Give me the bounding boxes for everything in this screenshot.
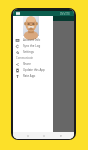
button[interactable]: Open navigation menu	[15, 11, 20, 16]
button[interactable]	[13, 16, 53, 36]
button[interactable]: Home	[41, 133, 46, 138]
button[interactable]: Rate App	[13, 73, 53, 79]
button[interactable]: Settings	[13, 49, 53, 55]
button[interactable]: Update this App	[13, 67, 53, 73]
staticText: Account Info	[23, 38, 41, 42]
button[interactable]: INVITE	[60, 12, 71, 16]
button[interactable]	[53, 16, 74, 132]
staticText: INVITE	[60, 12, 71, 16]
button[interactable]: Sync the Log	[13, 43, 53, 49]
button[interactable]: Account Info	[13, 37, 53, 43]
button[interactable]: Share	[13, 61, 53, 67]
staticText: Rate App	[23, 74, 36, 78]
staticText: Sync the Log	[23, 44, 41, 48]
button[interactable]: Back	[25, 133, 30, 138]
staticText: Update this App	[23, 68, 45, 72]
button[interactable]: Recents	[58, 133, 63, 138]
staticText: Share	[23, 62, 31, 66]
staticText: Communicate	[16, 56, 34, 60]
staticText: Settings	[23, 50, 34, 54]
